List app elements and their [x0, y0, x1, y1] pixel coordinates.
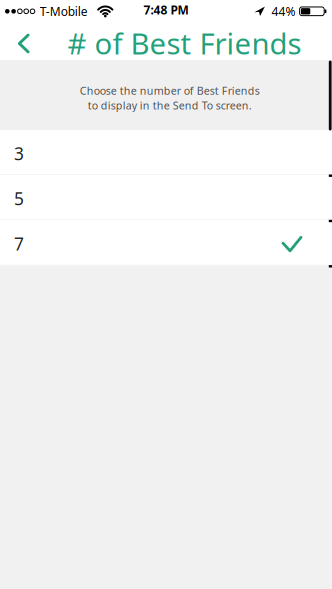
button[interactable]: 7	[0, 220, 332, 265]
button[interactable]: 3	[0, 130, 332, 174]
button[interactable]: 5	[0, 175, 332, 219]
staticText: Choose the number of Best Friends	[80, 84, 260, 98]
staticText: 5	[14, 187, 24, 210]
staticText: # of Best Friends	[67, 23, 301, 62]
staticText: 3	[14, 142, 24, 165]
button[interactable]: Back	[0, 21, 28, 60]
staticText: 7:48 PM	[143, 2, 188, 18]
staticText: to display in the Send To screen.	[88, 98, 252, 112]
staticText: 44%	[271, 3, 295, 19]
staticText: 7	[14, 232, 24, 255]
staticText: T-Mobile	[40, 3, 88, 19]
